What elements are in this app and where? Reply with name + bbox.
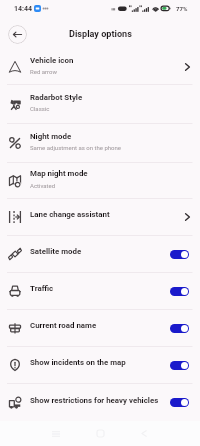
staticText: Traffic — [30, 284, 54, 293]
staticText: Same adjustment as on the phone — [30, 144, 122, 151]
staticText: Vehicle icon — [30, 56, 74, 65]
staticText: Activated — [30, 182, 56, 189]
button[interactable]: Satellite mode — [0, 236, 200, 272]
staticText: Display options — [69, 29, 132, 40]
button[interactable]: Back — [8, 25, 27, 44]
button[interactable]: Vehicle icon — [0, 50, 200, 84]
staticText: Current road name — [30, 321, 97, 330]
staticText: Map night mode — [30, 169, 88, 178]
button[interactable]: Show incidents on the map — [0, 347, 200, 383]
staticText: 77% — [176, 5, 188, 12]
button[interactable]: Radarbot Style — [0, 85, 200, 123]
staticText: Show restrictions for heavy vehicles — [30, 396, 159, 405]
button[interactable]: Current road name — [0, 310, 200, 346]
staticText: Satellite mode — [30, 247, 82, 256]
button[interactable]: Lane change assistant — [0, 199, 200, 235]
button[interactable]: Map night mode — [0, 163, 200, 198]
staticText: Night mode — [30, 132, 72, 141]
staticText: 14:44 — [14, 5, 33, 13]
staticText: Classic — [30, 105, 50, 112]
staticText: Lane change assistant — [30, 210, 110, 219]
button[interactable]: Show restrictions for heavy vehicles — [0, 384, 200, 421]
button[interactable]: Traffic — [0, 273, 200, 309]
button[interactable]: Night mode — [0, 124, 200, 162]
staticText: Red arrow — [30, 68, 57, 75]
staticText: Radarbot Style — [30, 93, 83, 102]
staticText: Show incidents on the map — [30, 358, 126, 367]
